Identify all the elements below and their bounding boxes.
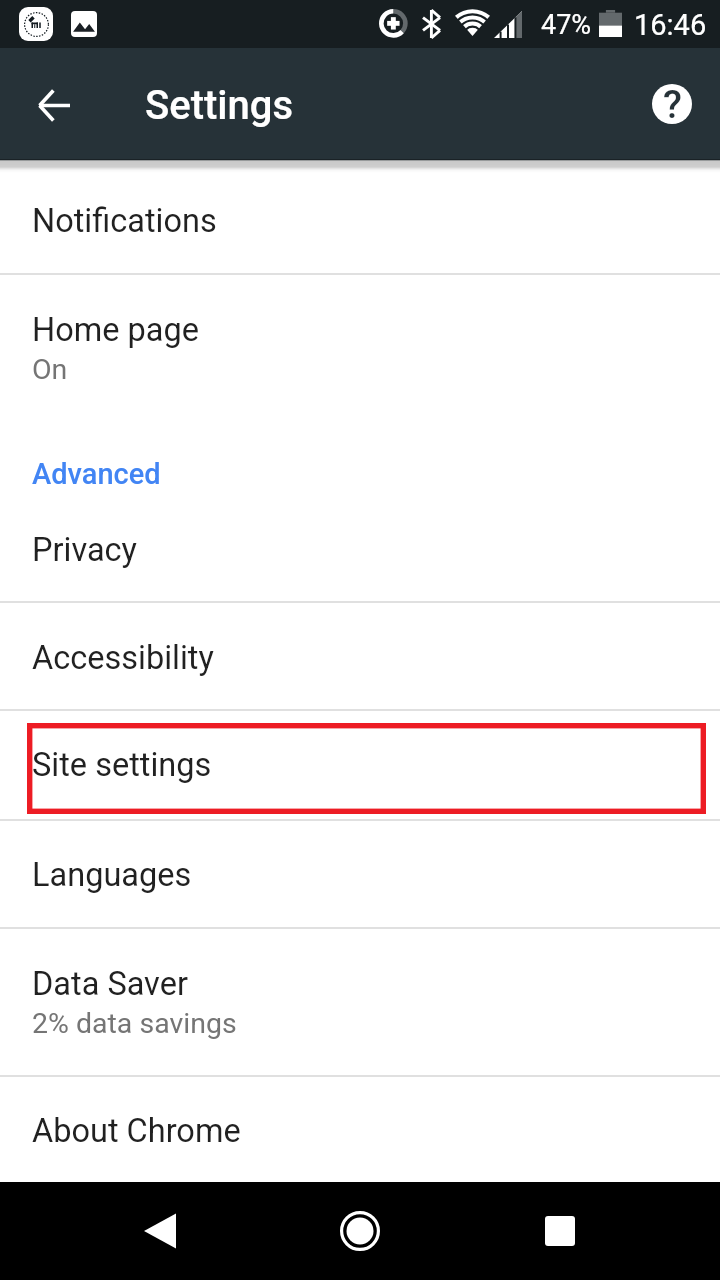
staticText: Settings (145, 82, 294, 129)
staticText: About Chrome (32, 1112, 241, 1150)
button[interactable]: Accessibility (0, 603, 720, 709)
staticText: Accessibility (32, 639, 214, 677)
staticText: Advanced (32, 457, 161, 491)
staticText: Languages (32, 856, 192, 894)
staticText: 2% data savings (32, 1007, 237, 1040)
button[interactable]: Home (324, 1195, 396, 1267)
button[interactable]: Data Saver (0, 929, 720, 1075)
button[interactable]: Help and feedback (640, 72, 704, 136)
staticText: Privacy (32, 531, 137, 569)
button[interactable]: Privacy (0, 515, 720, 601)
button[interactable]: Home page (0, 275, 720, 451)
button[interactable]: Navigate up (22, 73, 86, 137)
staticText: 16:46 (634, 8, 707, 42)
button[interactable]: Overview (524, 1195, 596, 1267)
button[interactable]: Site settings (0, 711, 720, 819)
button[interactable]: Languages (0, 821, 720, 927)
button[interactable]: Notifications (0, 163, 720, 273)
staticText: Home page (32, 311, 199, 349)
button[interactable]: About Chrome (0, 1077, 720, 1182)
staticText: 47% (541, 9, 592, 41)
button[interactable]: Back (124, 1195, 196, 1267)
staticText: ? (663, 84, 682, 122)
staticText: Data Saver (32, 965, 188, 1003)
staticText: Site settings (32, 746, 212, 784)
staticText: On (32, 353, 68, 386)
staticText: Notifications (32, 202, 217, 240)
